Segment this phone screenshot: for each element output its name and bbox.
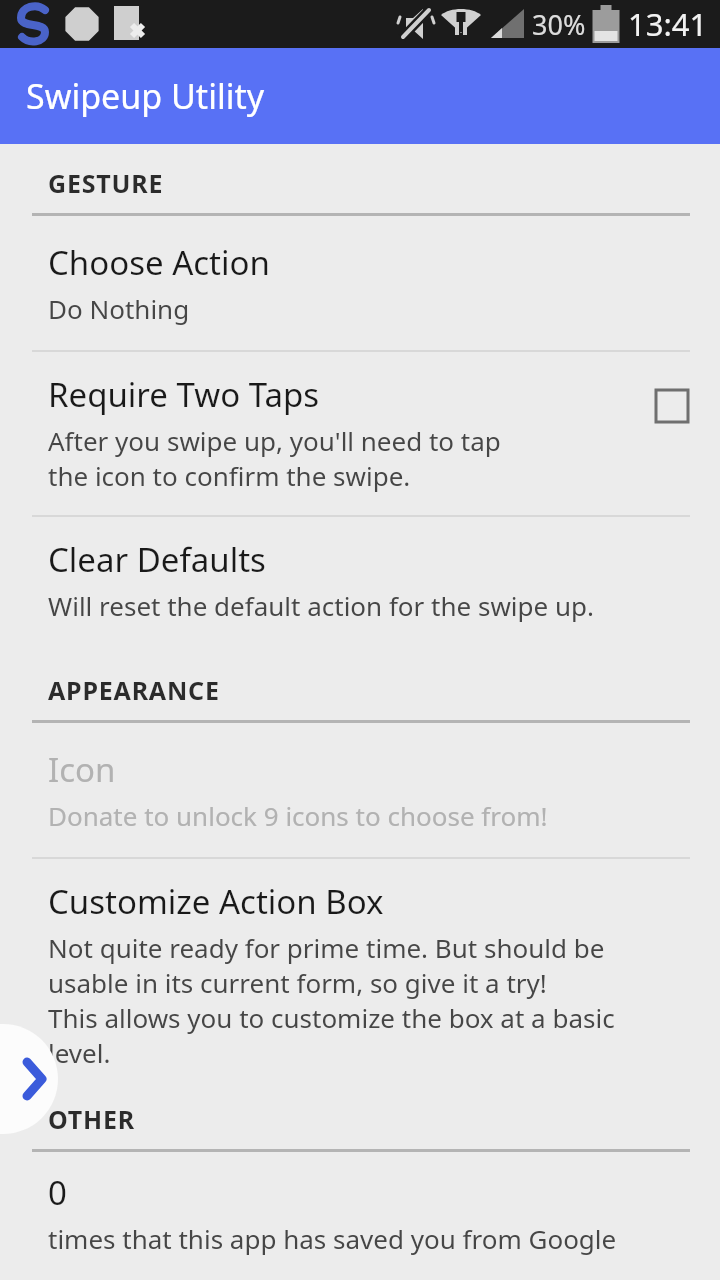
staticText: 0 — [48, 1170, 67, 1215]
staticText: APPEARANCE — [48, 673, 220, 707]
staticText: the icon to confirm the swipe. — [48, 458, 411, 493]
button[interactable]: Customize Action Box — [0, 859, 720, 1086]
staticText: After you swipe up, you'll need to tap — [48, 423, 501, 458]
staticText: Swipeup Utility — [26, 73, 265, 119]
staticText: This allows you to customize the box at … — [48, 1000, 615, 1035]
staticText: Icon — [48, 747, 116, 792]
staticText: 13:41 — [628, 3, 708, 45]
staticText: Choose Action — [48, 240, 270, 285]
button[interactable]: Icon — [0, 723, 720, 857]
staticText: Clear Defaults — [48, 537, 266, 582]
staticText: Donate to unlock 9 icons to choose from! — [48, 798, 548, 833]
staticText: GESTURE — [48, 166, 164, 200]
staticText: Not quite ready for prime time. But shou… — [48, 930, 605, 965]
staticText: times that this app has saved you from G… — [48, 1221, 617, 1256]
button[interactable]: Require Two Taps toggle — [654, 388, 690, 424]
staticText: level. — [48, 1035, 111, 1070]
button[interactable]: Clear Defaults — [0, 517, 720, 645]
button[interactable]: Require Two Taps — [0, 352, 720, 515]
button[interactable]: 0 — [0, 1152, 720, 1280]
button[interactable]: Choose Action — [0, 216, 720, 350]
button[interactable]: Open navigation drawer — [0, 1024, 58, 1134]
staticText: OTHER — [48, 1102, 135, 1136]
staticText: Customize Action Box — [48, 879, 384, 924]
staticText: Will reset the default action for the sw… — [48, 588, 595, 623]
staticText: Require Two Taps — [48, 372, 319, 417]
staticText: 30% — [532, 6, 586, 43]
staticText: usable in its current form, so give it a… — [48, 965, 547, 1000]
staticText: Do Nothing — [48, 291, 190, 326]
